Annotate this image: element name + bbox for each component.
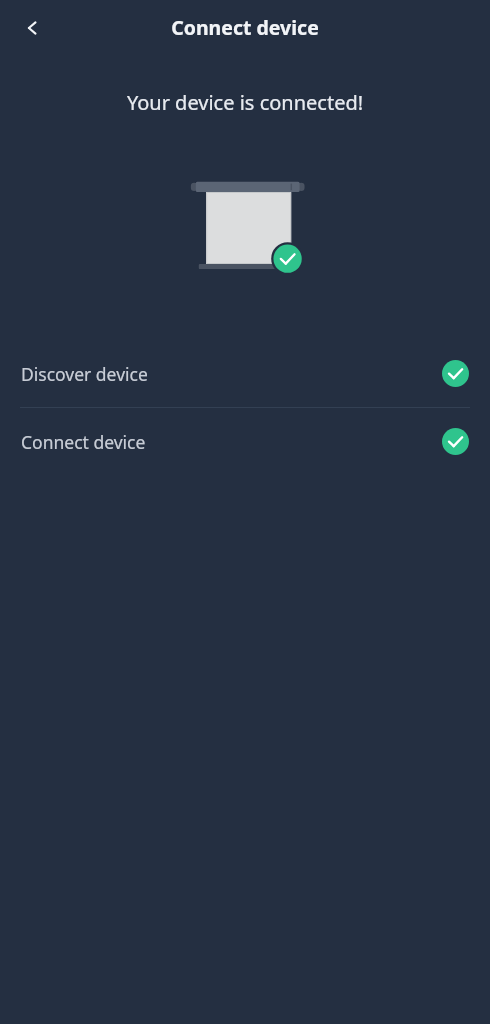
- button[interactable]: Discover device: [0, 340, 490, 407]
- staticText: Discover device: [21, 362, 148, 386]
- button[interactable]: Back: [10, 7, 52, 49]
- staticText: Connect device: [171, 14, 319, 41]
- staticText: Your device is connected!: [24, 89, 466, 116]
- staticText: Connect device: [21, 430, 146, 454]
- button[interactable]: Connect device: [0, 408, 490, 475]
